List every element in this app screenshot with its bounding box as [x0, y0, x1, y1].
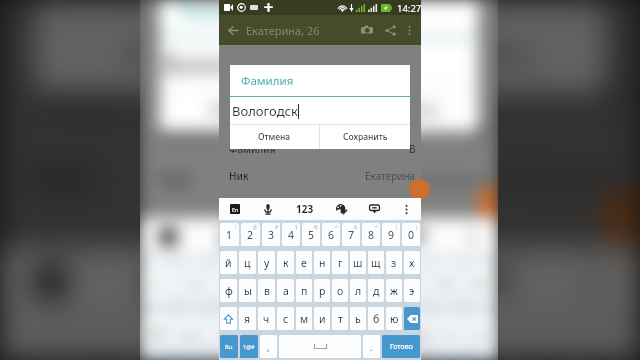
- button[interactable]: е: [276, 312, 305, 353]
- button[interactable]: Language: [156, 225, 181, 250]
- button[interactable]: [279, 335, 361, 358]
- button[interactable]: 123: [294, 202, 316, 216]
- button[interactable]: ц: [239, 251, 256, 274]
- button[interactable]: Сохранить: [320, 16, 605, 92]
- button[interactable]: [220, 307, 237, 330]
- button[interactable]: Camera: [357, 20, 377, 40]
- button[interactable]: х: [404, 251, 420, 274]
- button[interactable]: (: [382, 223, 400, 246]
- button[interactable]: ю: [386, 307, 402, 330]
- button[interactable]: Back: [224, 21, 242, 39]
- button[interactable]: Отмена: [230, 125, 319, 149]
- button[interactable]: #: [262, 223, 280, 246]
- button[interactable]: у: [258, 251, 275, 274]
- button[interactable]: э: [404, 279, 420, 302]
- button[interactable]: б: [368, 307, 384, 330]
- button[interactable]: More: [400, 203, 412, 215]
- button[interactable]: Отмена: [159, 88, 317, 131]
- button[interactable]: щ: [368, 251, 384, 274]
- button[interactable]: л: [350, 279, 366, 302]
- button[interactable]: @: [241, 223, 260, 246]
- button[interactable]: *: [393, 262, 425, 303]
- button[interactable]: ,: [260, 335, 277, 358]
- button[interactable]: Voice input: [261, 202, 275, 216]
- button[interactable]: Theme: [364, 260, 409, 304]
- button[interactable]: к: [243, 312, 273, 353]
- button[interactable]: а: [277, 279, 294, 302]
- button[interactable]: д: [368, 279, 384, 302]
- button[interactable]: !: [3, 326, 63, 360]
- button[interactable]: р: [314, 279, 330, 302]
- button[interactable]: (: [516, 326, 573, 360]
- button[interactable]: &: [358, 262, 390, 303]
- button[interactable]: !: [220, 223, 239, 246]
- button[interactable]: г: [340, 312, 369, 353]
- button[interactable]: Отмена: [35, 16, 317, 92]
- button[interactable]: в: [258, 279, 275, 302]
- button[interactable]: ы: [239, 279, 256, 302]
- button[interactable]: $: [200, 326, 257, 360]
- button[interactable]: н: [314, 251, 330, 274]
- button[interactable]: к: [277, 251, 294, 274]
- button[interactable]: *: [362, 223, 380, 246]
- button[interactable]: ф: [220, 279, 237, 302]
- button[interactable]: з: [436, 312, 464, 353]
- button[interactable]: ): [580, 326, 637, 360]
- button[interactable]: Edit: [602, 187, 640, 254]
- button[interactable]: я: [239, 307, 256, 330]
- button[interactable]: ч: [258, 307, 275, 330]
- button[interactable]: Edit: [477, 184, 498, 221]
- button[interactable]: Stickers: [402, 225, 427, 250]
- button[interactable]: .: [363, 335, 380, 358]
- button[interactable]: Share: [380, 20, 400, 40]
- button[interactable]: Edit: [409, 179, 430, 200]
- button[interactable]: Language: [28, 260, 73, 304]
- button[interactable]: х: [468, 312, 496, 353]
- button[interactable]: с: [277, 307, 294, 330]
- button[interactable]: 123: [238, 260, 307, 304]
- button[interactable]: щ: [404, 312, 432, 353]
- button[interactable]: Stickers: [367, 202, 381, 216]
- button[interactable]: Voice input: [214, 225, 239, 250]
- button[interactable]: *: [453, 326, 510, 360]
- button[interactable]: 123: [273, 225, 312, 250]
- button[interactable]: ш: [372, 312, 400, 353]
- button[interactable]: #: [136, 326, 193, 360]
- button[interactable]: #: [216, 262, 248, 303]
- button[interactable]: н: [308, 312, 337, 353]
- button[interactable]: Stickers: [469, 260, 513, 304]
- button[interactable]: Готово: [382, 335, 420, 358]
- button[interactable]: и: [314, 307, 330, 330]
- button[interactable]: &: [342, 223, 360, 246]
- button[interactable]: ): [402, 223, 420, 246]
- button[interactable]: Сохранить: [320, 125, 410, 149]
- button[interactable]: @: [70, 326, 130, 360]
- button[interactable]: г: [332, 251, 348, 274]
- button[interactable]: More: [461, 227, 482, 248]
- button[interactable]: %: [287, 262, 319, 303]
- button[interactable]: %: [302, 223, 320, 246]
- button[interactable]: т: [332, 307, 348, 330]
- button[interactable]: %: [263, 326, 320, 360]
- button[interactable]: м: [296, 307, 312, 330]
- button[interactable]: ^: [326, 326, 383, 360]
- button[interactable]: $: [252, 262, 283, 303]
- button[interactable]: ^: [322, 262, 354, 303]
- button[interactable]: Ru: [220, 335, 238, 358]
- button[interactable]: у: [209, 312, 239, 353]
- button[interactable]: $: [282, 223, 300, 246]
- button[interactable]: 1@#: [240, 335, 258, 358]
- button[interactable]: Voice input: [133, 260, 177, 304]
- button[interactable]: ш: [350, 251, 366, 274]
- button[interactable]: е: [296, 251, 312, 274]
- button[interactable]: ): [464, 262, 496, 303]
- button[interactable]: ж: [386, 279, 402, 302]
- button[interactable]: Theme: [334, 202, 348, 216]
- button[interactable]: з: [386, 251, 402, 274]
- button[interactable]: Сохранить: [319, 88, 478, 131]
- button[interactable]: Theme: [344, 225, 369, 250]
- button[interactable]: й: [142, 312, 172, 353]
